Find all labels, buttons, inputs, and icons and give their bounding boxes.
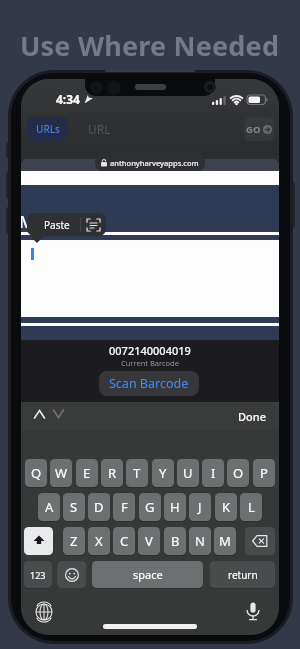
button[interactable] — [35, 603, 53, 621]
button[interactable]: D — [88, 493, 110, 521]
button[interactable]: T — [126, 459, 148, 487]
staticText: V — [145, 532, 153, 550]
button[interactable]: F — [113, 493, 135, 521]
staticText: M — [21, 210, 33, 230]
staticText: H — [170, 498, 180, 516]
button[interactable]: URLs — [27, 117, 68, 141]
staticText: URLs — [36, 122, 60, 136]
staticText: 0072140004019 — [109, 343, 191, 357]
staticText: W — [55, 464, 68, 482]
button[interactable] — [53, 410, 64, 418]
staticText: Q — [31, 464, 42, 482]
button[interactable]: R — [101, 459, 123, 487]
staticText: Paste — [44, 218, 70, 232]
button[interactable]: X — [88, 527, 110, 555]
staticText: P — [260, 464, 268, 482]
staticText: S — [70, 498, 78, 516]
staticText: Current Barcode — [121, 358, 179, 368]
staticText: E — [83, 464, 91, 482]
button[interactable]: E — [76, 459, 98, 487]
staticText: N — [195, 532, 205, 550]
staticText: J — [198, 498, 202, 516]
button[interactable]: A — [38, 493, 60, 521]
staticText: D — [94, 498, 104, 516]
staticText: I — [211, 464, 216, 482]
button[interactable]: Y — [152, 459, 174, 487]
button[interactable]: M — [214, 527, 236, 555]
button[interactable]: N — [189, 527, 211, 555]
staticText: R — [108, 464, 117, 482]
button[interactable] — [34, 410, 45, 418]
staticText: F — [121, 498, 128, 516]
button[interactable]: O — [227, 459, 249, 487]
staticText: 123 — [30, 569, 46, 581]
staticText: G — [145, 498, 155, 516]
button[interactable] — [57, 561, 86, 588]
staticText: Use Where Needed — [20, 27, 280, 59]
button[interactable]: 123 — [24, 561, 52, 588]
button[interactable]: G — [139, 493, 161, 521]
staticText: Z — [70, 532, 78, 550]
button[interactable]: P — [253, 459, 275, 487]
button[interactable]: space — [92, 561, 203, 588]
button[interactable] — [245, 602, 261, 622]
button[interactable]: I — [202, 459, 224, 487]
staticText: L — [248, 498, 255, 516]
staticText: O — [233, 464, 244, 482]
button[interactable] — [245, 527, 275, 555]
staticText: GO — [246, 123, 261, 136]
button[interactable]: Scan Barcode — [99, 371, 199, 396]
button[interactable]: Paste — [27, 213, 106, 236]
button[interactable]: U — [177, 459, 199, 487]
staticText: X — [95, 532, 103, 550]
button[interactable]: Done — [231, 402, 273, 430]
button[interactable]: W — [50, 459, 72, 487]
button[interactable]: return — [210, 561, 275, 588]
staticText: Done — [238, 409, 266, 424]
staticText: U — [183, 464, 193, 482]
staticText: T — [133, 464, 141, 482]
button[interactable]: C — [113, 527, 135, 555]
button[interactable]: Q — [25, 459, 47, 487]
staticText: 4:34 — [56, 91, 80, 105]
staticText: space — [133, 567, 163, 582]
staticText: URL — [88, 121, 111, 137]
button[interactable]: L — [240, 493, 262, 521]
staticText: B — [171, 532, 180, 550]
button[interactable] — [24, 527, 53, 555]
button[interactable]: GO — [244, 117, 274, 141]
staticText: K — [222, 498, 231, 516]
button[interactable]: Z — [63, 527, 85, 555]
staticText: return — [228, 568, 258, 582]
button[interactable]: V — [138, 527, 160, 555]
button[interactable]: J — [189, 493, 211, 521]
staticText: C — [120, 532, 129, 550]
button[interactable]: B — [164, 527, 186, 555]
staticText: M — [219, 532, 231, 550]
staticText: A — [45, 498, 54, 516]
button[interactable]: H — [164, 493, 186, 521]
button[interactable]: K — [215, 493, 237, 521]
staticText: Scan Barcode — [109, 375, 189, 392]
staticText: anthonyharveyapps.com — [110, 158, 199, 168]
staticText: Y — [159, 464, 167, 482]
button[interactable]: S — [63, 493, 85, 521]
